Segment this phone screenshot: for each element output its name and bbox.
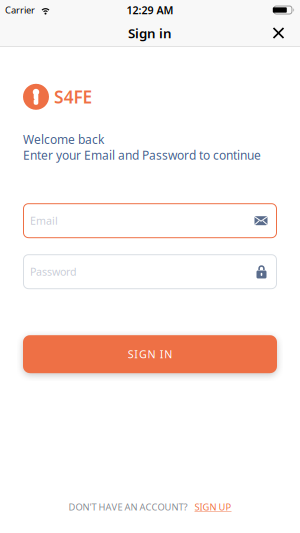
button[interactable]: SIGN IN: [23, 335, 277, 373]
staticText: Password: [30, 265, 77, 279]
staticText: Carrier: [5, 4, 35, 16]
staticText: 12:29 AM: [126, 3, 173, 17]
button[interactable]: [273, 27, 300, 38]
button[interactable]: Password: [23, 254, 277, 289]
staticText: SIGN IN: [128, 347, 172, 361]
staticText: Email: [30, 214, 58, 228]
staticText: Sign in: [128, 24, 172, 42]
button[interactable]: SIGN UP: [194, 501, 231, 513]
staticText: SIGN UP: [194, 501, 231, 513]
staticText: S4FE: [54, 85, 92, 108]
staticText: DON'T HAVE AN ACCOUNT?: [68, 501, 187, 513]
staticText: Welcome back Enter your Email and Passwo…: [23, 131, 261, 163]
button[interactable]: Email: [23, 203, 277, 238]
